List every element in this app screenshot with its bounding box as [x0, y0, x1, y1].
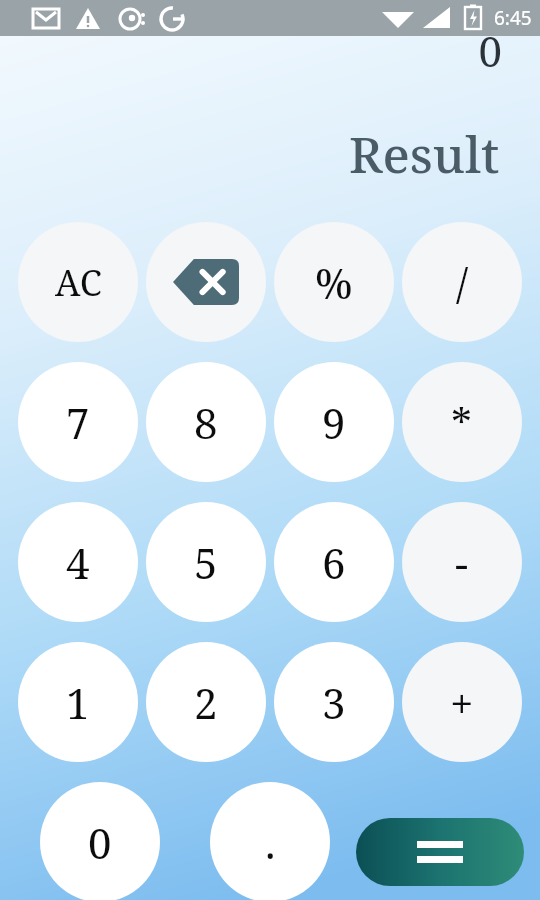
staticText: - [455, 534, 469, 591]
button[interactable]: / [402, 222, 522, 342]
button[interactable]: * [402, 362, 522, 482]
button[interactable]: % [274, 222, 394, 342]
staticText: % [315, 254, 353, 311]
button[interactable]: 2 [146, 642, 266, 762]
staticText: AC [55, 258, 102, 307]
button[interactable]: . [210, 782, 330, 900]
staticText: 8 [194, 394, 218, 451]
button[interactable]: AC [18, 222, 138, 342]
staticText: 0 [478, 22, 502, 79]
button[interactable]: 8 [146, 362, 266, 482]
button[interactable]: 9 [274, 362, 394, 482]
staticText: * [451, 394, 473, 451]
button[interactable]: - [402, 502, 522, 622]
staticText: 3 [322, 674, 346, 731]
staticText: / [456, 254, 469, 311]
button[interactable]: 3 [274, 642, 394, 762]
staticText: 4 [66, 534, 90, 591]
staticText: 7 [66, 394, 90, 451]
staticText: Result [349, 120, 500, 188]
button[interactable]: 1 [18, 642, 138, 762]
button[interactable]: 7 [18, 362, 138, 482]
button[interactable]: 5 [146, 502, 266, 622]
staticText: 5 [194, 534, 218, 591]
staticText: 1 [66, 674, 90, 731]
button[interactable]: + [402, 642, 522, 762]
staticText: . [265, 814, 276, 871]
button[interactable]: 6 [274, 502, 394, 622]
staticText: 6 [322, 534, 346, 591]
staticText: 0 [88, 814, 112, 871]
staticText: + [450, 674, 474, 731]
button[interactable]: 4 [18, 502, 138, 622]
button[interactable] [356, 818, 524, 886]
staticText: 2 [194, 674, 218, 731]
button[interactable]: 0 [40, 782, 160, 900]
staticText: 9 [322, 394, 346, 451]
staticText: 6:45 [494, 5, 532, 31]
button[interactable]: Backspace [146, 222, 266, 342]
